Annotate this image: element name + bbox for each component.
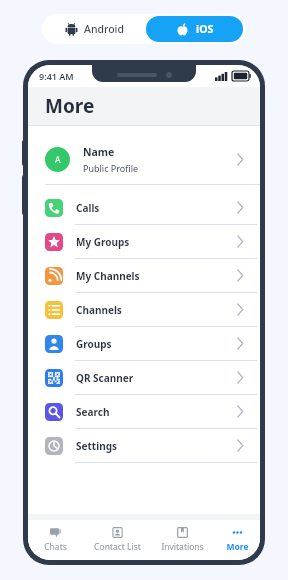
staticText: A <box>55 154 61 166</box>
staticText: 9:41 AM <box>39 70 74 82</box>
button[interactable]: Calls <box>28 191 260 225</box>
staticText: More <box>45 93 95 119</box>
button[interactable]: Chats <box>28 520 83 560</box>
staticText: My Groups <box>76 235 237 249</box>
button[interactable]: My Channels <box>28 259 260 293</box>
button[interactable]: iOS <box>146 16 243 42</box>
staticText: Chats <box>44 541 67 553</box>
button[interactable]: A <box>28 134 260 184</box>
staticText: Channels <box>76 303 237 317</box>
button[interactable]: My Groups <box>28 225 260 259</box>
staticText: Groups <box>76 337 237 351</box>
button[interactable]: More <box>214 520 260 560</box>
button[interactable]: Contact List <box>83 520 151 560</box>
staticText: QR Scanner <box>76 371 237 385</box>
staticText: Invitations <box>161 541 204 553</box>
staticText: Name <box>83 145 115 159</box>
staticText: Android <box>84 22 124 36</box>
staticText: Contact List <box>94 541 141 553</box>
button[interactable]: Groups <box>28 327 260 361</box>
button[interactable]: Search <box>28 395 260 429</box>
button[interactable]: Settings <box>28 429 260 463</box>
button[interactable]: QR Scanner <box>28 361 260 395</box>
button[interactable]: Channels <box>28 293 260 327</box>
button[interactable]: Invitations <box>151 520 214 560</box>
staticText: Public Profile <box>83 162 139 174</box>
staticText: More <box>226 541 249 553</box>
staticText: My Channels <box>76 269 237 283</box>
staticText: Search <box>76 405 237 419</box>
staticText: Calls <box>76 201 237 215</box>
staticText: iOS <box>196 22 214 36</box>
staticText: Settings <box>76 439 237 453</box>
button[interactable]: Android <box>42 14 146 44</box>
